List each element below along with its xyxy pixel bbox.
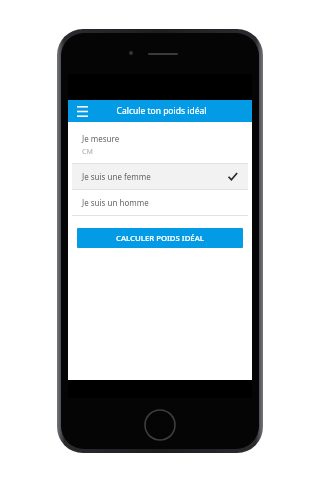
button[interactable]: Je mesure bbox=[72, 126, 248, 163]
staticText: Je mesure bbox=[82, 133, 120, 144]
button[interactable]: Open navigation menu bbox=[75, 104, 89, 118]
staticText: CALCULER POIDS IDÉAL bbox=[116, 233, 204, 244]
staticText: Je suis une femme bbox=[82, 171, 227, 182]
button[interactable]: CALCULER POIDS IDÉAL bbox=[77, 228, 243, 248]
button[interactable]: Je suis un homme bbox=[72, 190, 248, 215]
staticText: Calcule ton poids idéal bbox=[89, 105, 234, 117]
staticText: Je suis un homme bbox=[82, 197, 149, 208]
button[interactable]: Je suis une femme bbox=[72, 164, 248, 189]
other: Home bbox=[144, 409, 176, 441]
button[interactable]: Open navigation menu bbox=[68, 100, 252, 122]
staticText: CM bbox=[82, 147, 93, 157]
